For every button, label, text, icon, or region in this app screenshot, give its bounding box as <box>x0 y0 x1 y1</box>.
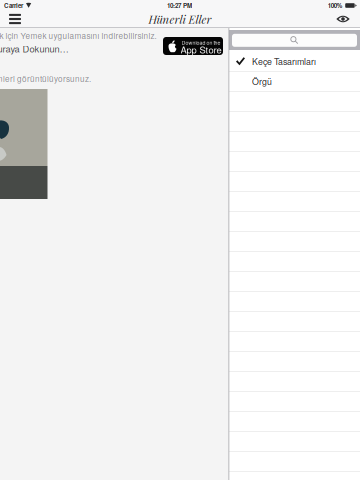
button[interactable] <box>229 291 360 311</box>
button[interactable] <box>229 431 360 451</box>
button[interactable] <box>229 371 360 391</box>
button[interactable]: Download on the App Store <box>163 37 223 55</box>
button[interactable] <box>229 131 360 151</box>
button[interactable] <box>229 231 360 251</box>
staticText: 10:27 PM <box>167 1 192 10</box>
button[interactable] <box>229 251 360 271</box>
button[interactable]: Keçe Tasarımları <box>229 51 360 71</box>
button[interactable]: Menu <box>2 11 28 26</box>
button[interactable]: Örgü <box>229 71 360 91</box>
button[interactable] <box>229 451 360 471</box>
staticText: Örgü <box>252 75 272 87</box>
staticText: App Store <box>180 43 221 56</box>
staticText: nek için Yemek uygulamasını indirebilirs… <box>0 30 156 41</box>
button[interactable] <box>229 311 360 331</box>
button[interactable] <box>229 391 360 411</box>
button[interactable] <box>229 351 360 371</box>
staticText: Download on the <box>181 39 220 46</box>
button[interactable] <box>229 271 360 291</box>
button[interactable] <box>229 91 360 111</box>
staticText: Keçe Tasarımları <box>252 55 316 67</box>
button[interactable] <box>229 191 360 211</box>
button[interactable]: Preview <box>330 11 356 26</box>
staticText: uraya Dokunun… <box>0 42 68 55</box>
button[interactable] <box>229 211 360 231</box>
staticText: Carrier <box>4 1 23 10</box>
button[interactable] <box>229 171 360 191</box>
button[interactable] <box>229 411 360 431</box>
button[interactable] <box>229 151 360 171</box>
staticText: 100% <box>328 1 343 10</box>
staticText: Hünerli Eller <box>148 11 211 26</box>
button[interactable] <box>229 331 360 351</box>
button[interactable] <box>229 111 360 131</box>
staticText: ünleri görüntülüyorsunuz. <box>0 73 91 84</box>
